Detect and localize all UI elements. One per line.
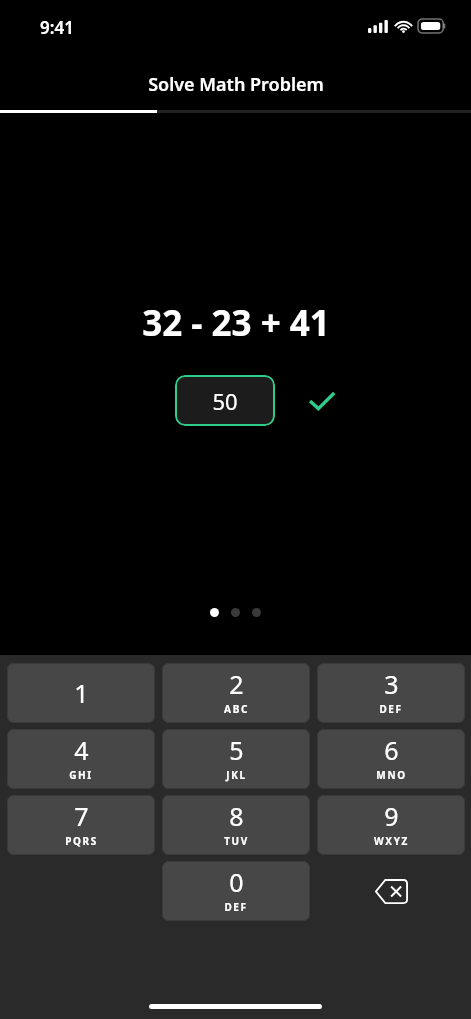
button[interactable]: 2 [162,663,310,723]
staticText: 1 [74,676,89,710]
button[interactable]: 0 [162,861,310,921]
staticText: GHI [69,768,93,782]
staticText: DEF [379,702,403,716]
button[interactable]: Backspace [317,861,465,921]
staticText: 9:41 [40,16,74,39]
staticText: 7 [74,799,89,833]
staticText: 50 [212,386,238,416]
button[interactable]: 8 [162,795,310,855]
button[interactable]: 9 [317,795,465,855]
button[interactable]: 5 [162,729,310,789]
button[interactable] [231,608,240,617]
staticText: 8 [229,799,244,833]
staticText: 5 [229,733,244,767]
staticText: 0 [229,865,244,899]
button[interactable]: 6 [317,729,465,789]
staticText: 4 [74,733,89,767]
staticText: 6 [384,733,399,767]
staticText: JKL [226,768,247,782]
staticText: PQRS [65,834,98,848]
staticText: Solve Math Problem [148,72,324,97]
staticText: MNO [376,768,407,782]
button[interactable]: 1 [7,663,155,723]
button[interactable] [252,608,261,617]
staticText: TUV [224,834,249,848]
button[interactable]: 4 [7,729,155,789]
staticText: 32 - 23 + 41 [142,299,330,347]
staticText: 3 [384,667,399,701]
button[interactable]: 50 [175,375,275,426]
staticText: 9 [384,799,399,833]
button[interactable] [210,608,219,617]
staticText: 2 [229,667,244,701]
staticText: ABC [224,702,249,716]
staticText: WXYZ [374,834,409,848]
staticText: DEF [224,900,248,914]
button[interactable]: 3 [317,663,465,723]
other: Correct [309,391,335,411]
button[interactable]: 7 [7,795,155,855]
